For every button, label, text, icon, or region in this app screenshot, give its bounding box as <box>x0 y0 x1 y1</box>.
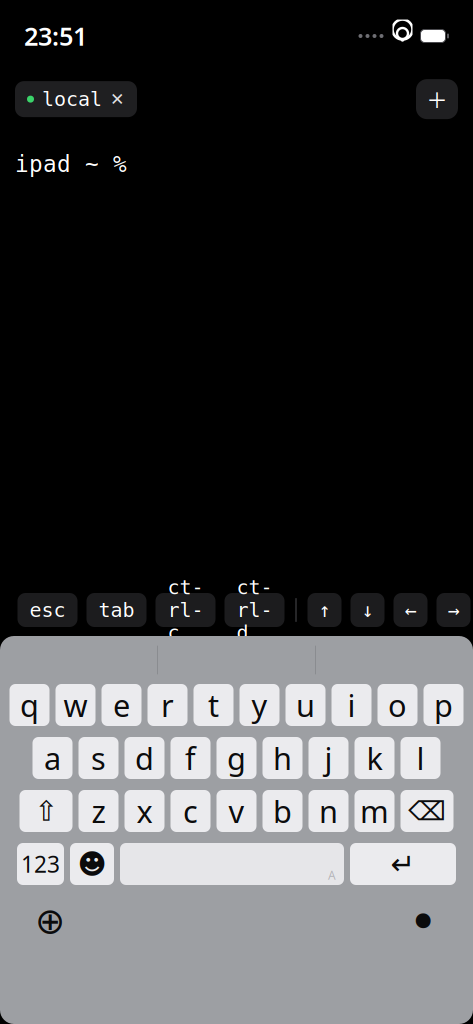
button[interactable]: Switch keyboard <box>28 899 72 943</box>
staticText: ↑ <box>318 599 330 621</box>
staticText: tab <box>98 599 134 621</box>
button[interactable]: p <box>423 684 463 726</box>
staticText: l <box>416 738 424 778</box>
staticText: s <box>91 738 106 778</box>
button[interactable]: Shift <box>19 790 72 832</box>
button[interactable]: x <box>124 790 164 832</box>
button[interactable]: g <box>216 737 256 779</box>
button[interactable]: Delete <box>400 790 453 832</box>
staticText: g <box>227 738 246 778</box>
button[interactable]: v <box>216 790 256 832</box>
staticText: y <box>251 685 267 725</box>
button[interactable]: c <box>170 790 210 832</box>
button[interactable]: b <box>262 790 302 832</box>
button[interactable]: q <box>9 684 49 726</box>
staticText: h <box>273 738 292 778</box>
staticText: ⊕ <box>35 901 65 941</box>
staticText: a <box>44 738 61 778</box>
staticText: ☻ <box>77 848 106 880</box>
staticText: j <box>324 738 332 778</box>
staticText: c <box>183 791 198 831</box>
staticText: o <box>388 685 407 725</box>
button[interactable]: e <box>101 684 141 726</box>
button[interactable]: z <box>78 790 118 832</box>
staticText: local <box>42 88 102 110</box>
staticText: r <box>161 685 174 725</box>
button[interactable]: n <box>308 790 348 832</box>
staticText: ↵ <box>390 847 415 881</box>
staticText: A <box>328 867 336 883</box>
staticText: ctrl-c <box>167 576 203 644</box>
staticText: w <box>63 685 87 725</box>
staticText: z <box>91 791 105 831</box>
staticText: ipad ~ % <box>15 151 127 177</box>
button[interactable]: Dictation <box>401 899 445 943</box>
button[interactable]: j <box>308 737 348 779</box>
button[interactable]: d <box>124 737 164 779</box>
staticText: esc <box>29 599 65 621</box>
staticText: v <box>228 791 244 831</box>
staticText: u <box>296 685 315 725</box>
staticText: i <box>347 685 355 725</box>
staticText: t <box>208 685 219 725</box>
staticText: ⏺ <box>415 905 431 937</box>
button[interactable]: a <box>32 737 72 779</box>
staticText: ↓ <box>361 599 373 621</box>
button[interactable]: u <box>285 684 325 726</box>
button[interactable]: local <box>15 81 137 117</box>
button[interactable]: f <box>170 737 210 779</box>
staticText: → <box>447 599 459 621</box>
staticText: e <box>113 685 130 725</box>
button[interactable]: Space <box>120 843 344 885</box>
button[interactable]: m <box>354 790 394 832</box>
button[interactable]: r <box>147 684 187 726</box>
staticText: p <box>434 685 453 725</box>
button[interactable]: esc <box>17 593 77 627</box>
button[interactable]: ← <box>393 593 427 627</box>
staticText: d <box>135 738 154 778</box>
staticText: ← <box>404 599 416 621</box>
button[interactable]: s <box>78 737 118 779</box>
staticText: + <box>427 77 446 121</box>
staticText: k <box>366 738 382 778</box>
staticText: f <box>185 738 196 778</box>
staticText: b <box>273 791 292 831</box>
button[interactable]: ↑ <box>307 593 341 627</box>
button[interactable]: l <box>400 737 440 779</box>
staticText: q <box>20 685 39 725</box>
button[interactable]: Emoji <box>70 843 114 885</box>
staticText: m <box>360 791 389 831</box>
button[interactable]: i <box>331 684 371 726</box>
staticText: ✕ <box>110 89 125 109</box>
button[interactable]: w <box>55 684 95 726</box>
button[interactable]: New tab <box>416 77 458 121</box>
button[interactable]: h <box>262 737 302 779</box>
staticText: ⇧ <box>34 795 57 827</box>
staticText: ctrl-d <box>236 576 272 644</box>
staticText: 23:51 <box>24 19 87 53</box>
button[interactable]: ctrl-c <box>155 593 215 627</box>
button[interactable]: k <box>354 737 394 779</box>
button[interactable]: ↓ <box>350 593 384 627</box>
button[interactable]: o <box>377 684 417 726</box>
staticText: n <box>319 791 338 831</box>
button[interactable]: Numbers <box>17 843 64 885</box>
button[interactable]: ctrl-d <box>224 593 284 627</box>
staticText: 123 <box>21 849 60 879</box>
button[interactable]: Return <box>350 843 456 885</box>
button[interactable]: → <box>436 593 470 627</box>
button[interactable]: t <box>193 684 233 726</box>
button[interactable]: y <box>239 684 279 726</box>
staticText: ⌫ <box>408 796 446 826</box>
staticText: x <box>136 791 152 831</box>
button[interactable]: tab <box>86 593 146 627</box>
